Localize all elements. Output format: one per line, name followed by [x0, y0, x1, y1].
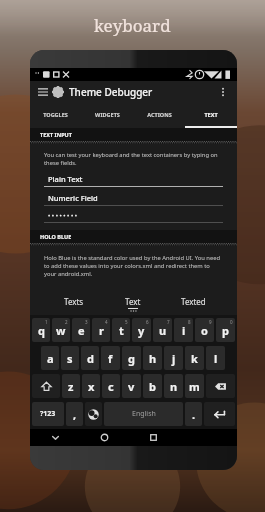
- staticText: a: [47, 351, 54, 366]
- button[interactable]: k: [185, 346, 204, 370]
- button[interactable]: Enter: [204, 402, 235, 426]
- button[interactable]: Delete: [206, 374, 235, 398]
- button[interactable]: ?123: [32, 402, 64, 426]
- staticText: Plain Text: [48, 174, 83, 184]
- staticText: v: [128, 379, 135, 394]
- button[interactable]: Plain Text: [44, 174, 223, 187]
- button[interactable]: c: [102, 374, 120, 398]
- button[interactable]: English: [104, 402, 183, 426]
- staticText: o: [201, 323, 208, 338]
- staticText: TEXT: [204, 111, 218, 118]
- staticText: TOGGLES: [43, 111, 68, 118]
- button[interactable]: Recent apps: [129, 429, 178, 446]
- button[interactable]: p: [216, 318, 235, 342]
- staticText: b: [149, 379, 156, 394]
- staticText: Theme Debugger: [69, 85, 153, 99]
- staticText: 9: [209, 319, 212, 325]
- staticText: ,: [73, 407, 77, 422]
- button[interactable]: Texted: [163, 296, 223, 307]
- staticText: WIDGETS: [95, 111, 120, 118]
- button[interactable]: Numeric Field: [44, 193, 223, 206]
- staticText: n: [170, 379, 178, 394]
- staticText: m: [189, 379, 200, 394]
- button[interactable]: TOGGLES: [30, 103, 81, 126]
- button[interactable]: Shift: [32, 374, 60, 398]
- button[interactable]: f: [101, 346, 120, 370]
- button[interactable]: w: [52, 318, 70, 342]
- button[interactable]: o: [195, 318, 214, 342]
- staticText: 0: [230, 319, 233, 325]
- button[interactable]: d: [81, 346, 99, 370]
- button[interactable]: t: [112, 318, 130, 342]
- staticText: keyboard: [94, 14, 171, 37]
- button[interactable]: ACTIONS: [133, 103, 185, 126]
- button[interactable]: Home: [80, 429, 129, 446]
- staticText: 7: [167, 319, 170, 325]
- staticText: Texts: [64, 296, 84, 307]
- button[interactable]: a: [41, 346, 59, 370]
- staticText: w: [56, 323, 66, 338]
- button[interactable]: b: [143, 374, 162, 398]
- staticText: Numeric Field: [48, 193, 98, 203]
- staticText: j: [172, 351, 176, 366]
- button[interactable]: .: [185, 402, 202, 426]
- button[interactable]: h: [143, 346, 162, 370]
- staticText: 3: [85, 319, 88, 325]
- button[interactable]: s: [61, 346, 79, 370]
- staticText: l: [214, 351, 218, 366]
- staticText: p: [222, 323, 229, 338]
- staticText: 8: [188, 319, 191, 325]
- staticText: Holo Blue is the standard color used by …: [44, 254, 223, 278]
- staticText: 6: [146, 319, 149, 325]
- staticText: t: [119, 323, 124, 338]
- staticText: HOLO BLUE: [40, 233, 72, 240]
- button[interactable]: x: [82, 374, 100, 398]
- staticText: y: [138, 323, 145, 338]
- staticText: 4: [105, 319, 108, 325]
- button[interactable]: TEXT: [185, 103, 237, 126]
- staticText: English: [132, 409, 156, 419]
- staticText: k: [191, 351, 198, 366]
- staticText: ?123: [40, 409, 56, 419]
- button[interactable]: l: [206, 346, 225, 370]
- staticText: TEXT INPUT: [40, 131, 72, 138]
- button[interactable]: u: [153, 318, 172, 342]
- button[interactable]: Change language: [85, 402, 102, 426]
- staticText: Text: [125, 296, 141, 307]
- button[interactable]: g: [122, 346, 141, 370]
- button[interactable]: m: [185, 374, 204, 398]
- button[interactable]: r: [92, 318, 110, 342]
- button[interactable]: Texts: [44, 296, 103, 307]
- button[interactable]: n: [164, 374, 183, 398]
- button[interactable]: j: [164, 346, 183, 370]
- staticText: r: [99, 323, 104, 338]
- button[interactable]: y: [132, 318, 151, 342]
- button[interactable]: More options: [214, 83, 232, 101]
- staticText: h: [149, 351, 157, 366]
- staticText: You can test your keyboard and the text …: [44, 151, 223, 167]
- button[interactable]: ,: [66, 402, 83, 426]
- staticText: z: [68, 379, 74, 394]
- button[interactable]: e: [72, 318, 90, 342]
- staticText: .: [192, 407, 196, 422]
- button[interactable]: z: [62, 374, 80, 398]
- staticText: f: [108, 351, 113, 366]
- button[interactable]: i: [174, 318, 193, 342]
- staticText: i: [182, 323, 186, 338]
- button[interactable]: WIDGETS: [81, 103, 133, 126]
- staticText: 5: [125, 319, 128, 325]
- button[interactable]: v: [122, 374, 141, 398]
- staticText: g: [128, 351, 135, 366]
- button[interactable]: • • • • • • • •: [44, 212, 223, 223]
- button[interactable]: Text: [103, 296, 163, 312]
- button[interactable]: Open navigation drawer: [35, 84, 51, 100]
- staticText: d: [87, 351, 94, 366]
- button[interactable]: Hide keyboard: [30, 429, 80, 446]
- staticText: e: [78, 323, 85, 338]
- button[interactable]: q: [32, 318, 50, 342]
- staticText: Texted: [181, 296, 206, 307]
- staticText: 2: [65, 319, 68, 325]
- staticText: • • • • • • • •: [48, 212, 77, 220]
- staticText: u: [159, 323, 167, 338]
- staticText: c: [108, 379, 114, 394]
